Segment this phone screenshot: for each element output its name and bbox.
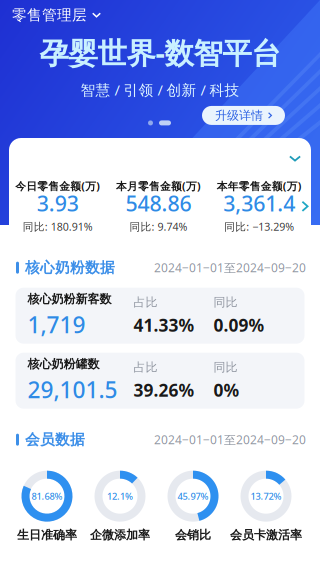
staticText: 本月零售金额(万): [116, 179, 201, 193]
staticText: 同比: [213, 360, 237, 374]
button[interactable]: 升级详情: [202, 106, 285, 125]
staticText: 占比: [133, 360, 157, 374]
staticText: 生日准确率: [17, 528, 77, 542]
staticText: 1,719: [27, 309, 85, 340]
button[interactable]: Collapse summary: [279, 149, 311, 167]
staticText: 3,361.4: [223, 189, 295, 217]
staticText: 会销比: [175, 528, 211, 542]
staticText: 45.97%: [177, 490, 208, 502]
staticText: 2024−01−01至2024−09−20: [154, 432, 306, 448]
staticText: 核心奶粉罐数: [27, 357, 99, 371]
staticText: 39.26%: [133, 378, 194, 401]
staticText: 同比: [213, 295, 237, 309]
staticText: 13.72%: [250, 490, 281, 502]
staticText: 同比: 180.91%: [23, 219, 93, 234]
button[interactable]: More metrics: [297, 197, 312, 216]
staticText: 核心奶粉数据: [25, 259, 115, 277]
staticText: 12.1%: [107, 490, 133, 502]
button[interactable]: 零售管理层: [0, 3, 111, 27]
staticText: 占比: [133, 295, 157, 309]
staticText: 智慧 / 引领 / 创新 / 科技: [80, 80, 239, 99]
staticText: 会员卡激活率: [230, 528, 302, 542]
staticText: 会员数据: [25, 431, 85, 449]
staticText: 今日零售金额(万): [15, 179, 100, 193]
staticText: 本年零售金额(万): [217, 179, 302, 193]
staticText: 29,101.5: [27, 374, 117, 405]
staticText: 548.86: [125, 189, 191, 217]
staticText: 核心奶粉新客数: [27, 292, 111, 306]
staticText: 41.33%: [133, 313, 194, 336]
staticText: 同比: 9.74%: [129, 219, 187, 234]
staticText: 0.09%: [213, 313, 264, 336]
staticText: 同比: −13.29%: [224, 219, 294, 234]
staticText: 81.68%: [31, 490, 62, 502]
staticText: 升级详情: [215, 108, 263, 123]
staticText: 0%: [213, 378, 239, 401]
staticText: 企微添加率: [90, 528, 150, 542]
staticText: 2024−01−01至2024−09−20: [154, 260, 306, 276]
staticText: 零售管理层: [12, 6, 87, 24]
staticText: 孕婴世界-数智平台: [39, 33, 280, 72]
staticText: 3.93: [37, 189, 79, 217]
